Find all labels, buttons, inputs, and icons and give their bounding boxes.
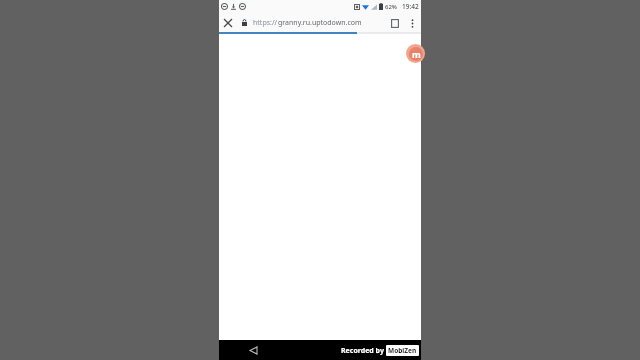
staticText: https:// (253, 18, 278, 28)
button[interactable]: Close (219, 14, 237, 32)
button[interactable]: Back (245, 342, 261, 358)
button[interactable]: Bookmark (386, 14, 404, 32)
staticText: MobiZen (388, 346, 417, 355)
staticText: granny.ru.uptodown.com (278, 18, 362, 28)
staticText: m (412, 48, 421, 60)
staticText: 62% (385, 3, 397, 11)
button[interactable]: More options (404, 15, 420, 31)
staticText: Recorded by (341, 346, 384, 356)
button[interactable]: https:// (253, 18, 386, 28)
staticText: 19:42 (402, 2, 419, 11)
other: Secure connection (239, 17, 250, 28)
